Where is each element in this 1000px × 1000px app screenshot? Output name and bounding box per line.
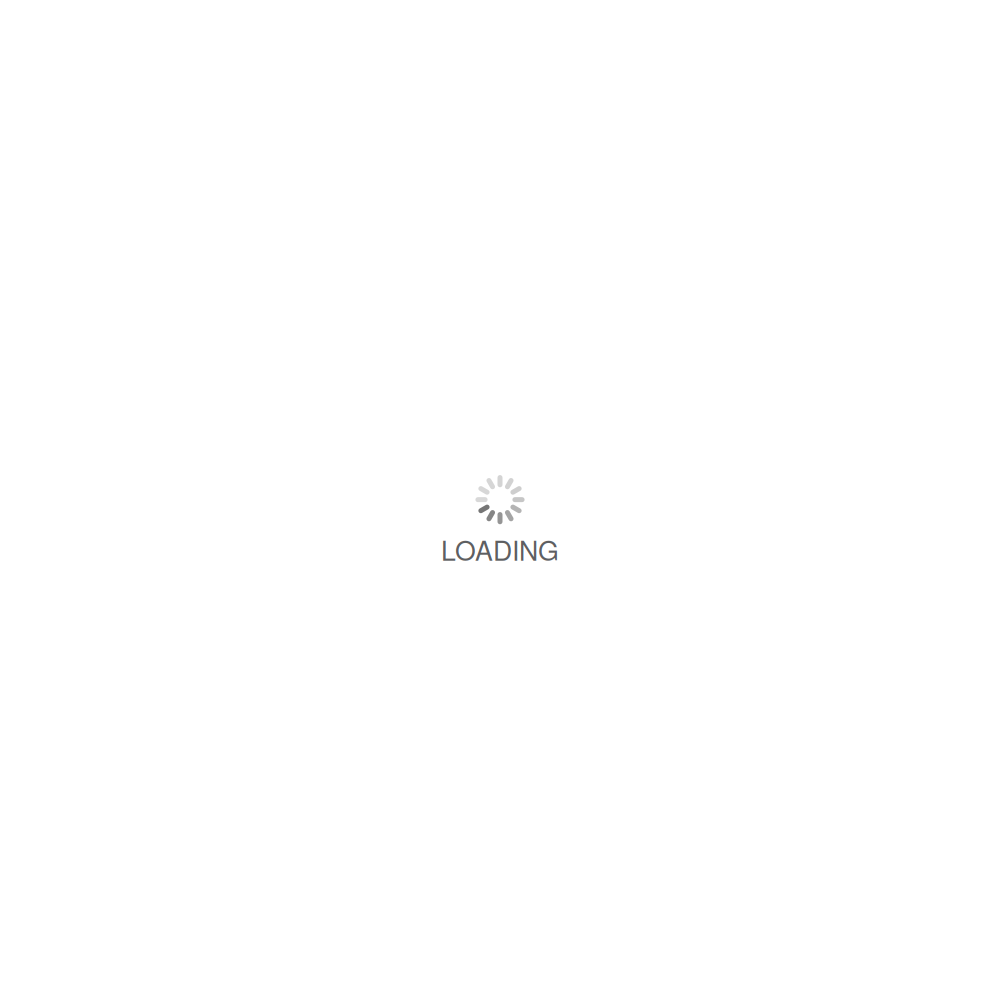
staticText: LOADING: [441, 530, 559, 568]
